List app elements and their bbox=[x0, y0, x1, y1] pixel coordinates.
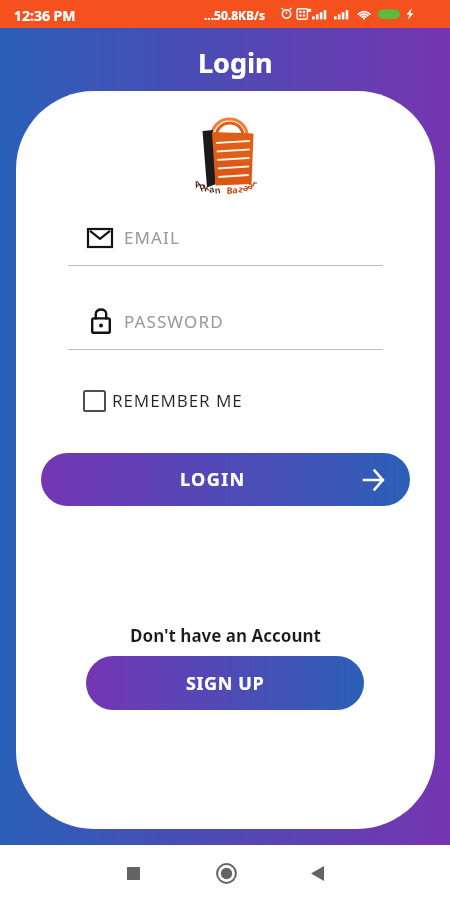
button[interactable]: SIGN UP bbox=[86, 656, 364, 710]
staticText: 12:36 PM bbox=[14, 6, 76, 25]
button[interactable]: Back bbox=[291, 847, 343, 899]
staticText: LOGIN bbox=[180, 467, 246, 492]
staticText: SIGN UP bbox=[186, 671, 265, 696]
button[interactable]: Recents bbox=[107, 847, 159, 899]
staticText: PASSWORD bbox=[124, 310, 224, 333]
staticText: EMAIL bbox=[124, 226, 180, 249]
button[interactable]: LOGIN bbox=[41, 453, 410, 506]
staticText: Don't have an Account bbox=[16, 624, 435, 647]
staticText: ...50.8KB/s bbox=[204, 7, 266, 23]
staticText: REMEMBER ME bbox=[112, 389, 243, 412]
button[interactable]: REMEMBER ME bbox=[80, 385, 247, 416]
staticText: Login bbox=[198, 44, 273, 81]
button[interactable]: Home bbox=[200, 847, 252, 899]
other: Login bbox=[363, 470, 384, 490]
